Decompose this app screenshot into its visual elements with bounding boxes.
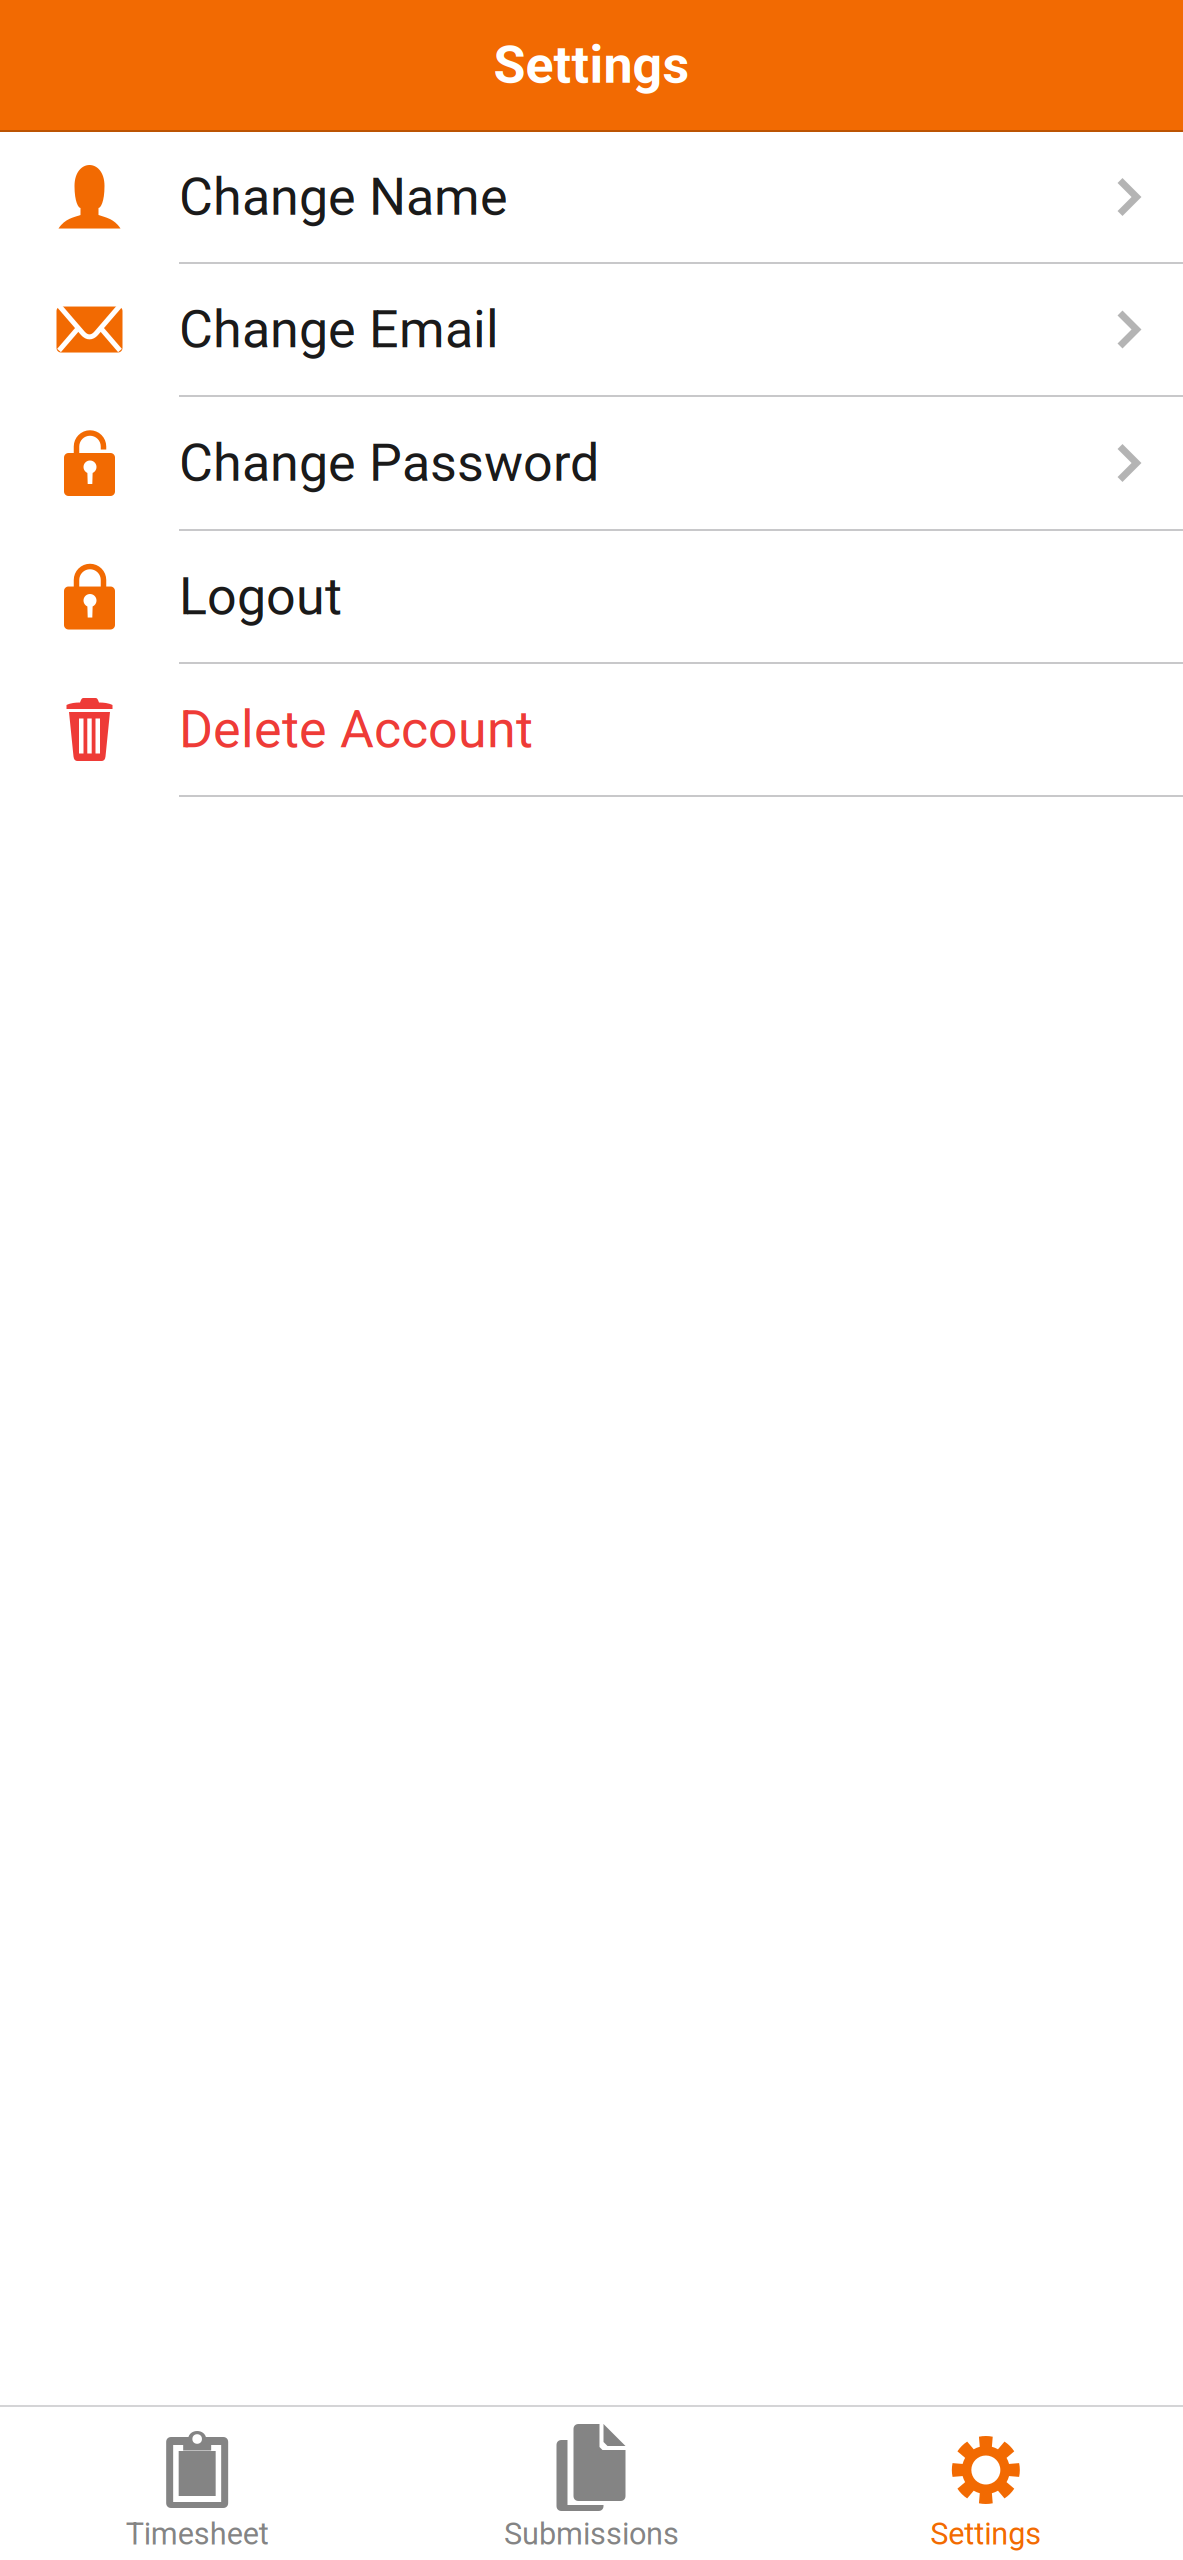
staticText: Logout <box>179 566 342 627</box>
button[interactable]: Settings <box>789 2407 1183 2560</box>
staticText: Change Password <box>179 432 599 493</box>
button[interactable]: Change Email <box>0 264 1183 397</box>
staticText: Change Email <box>179 299 499 360</box>
button[interactable]: Timesheet <box>0 2407 394 2560</box>
staticText: Submissions <box>504 2516 679 2552</box>
staticText: Delete Account <box>179 699 533 760</box>
button[interactable]: Delete Account <box>0 664 1183 797</box>
button[interactable]: Change Name <box>0 132 1183 264</box>
button[interactable]: Logout <box>0 531 1183 664</box>
staticText: Settings <box>493 34 689 95</box>
button[interactable]: Change Password <box>0 397 1183 531</box>
staticText: Timesheet <box>126 2516 269 2552</box>
button[interactable]: Submissions <box>394 2407 789 2560</box>
staticText: Settings <box>930 2516 1041 2552</box>
staticText: Change Name <box>179 166 508 227</box>
